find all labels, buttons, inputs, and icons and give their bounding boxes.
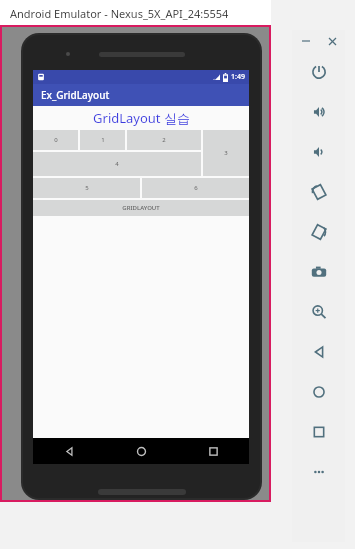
button[interactable]: Home: [105, 438, 177, 464]
button[interactable]: Volume down: [292, 132, 345, 172]
button[interactable]: Back: [292, 332, 345, 372]
staticText: Ex_GridLayout: [41, 88, 110, 102]
button[interactable]: GRIDLAYOUT: [33, 200, 249, 216]
staticText: 1: [101, 136, 105, 144]
staticText: GRIDLAYOUT: [122, 204, 160, 212]
staticText: GridLayout 실습: [93, 109, 190, 127]
button[interactable]: Volume up: [292, 92, 345, 132]
button[interactable]: Take screenshot: [292, 252, 345, 292]
button[interactable]: 5: [33, 178, 140, 198]
staticText: 3: [224, 149, 228, 157]
button[interactable]: 0: [33, 130, 78, 150]
staticText: 1:49: [231, 72, 245, 82]
button[interactable]: Power: [292, 52, 345, 92]
button[interactable]: 6: [142, 178, 249, 198]
button[interactable]: 2: [127, 130, 201, 150]
button[interactable]: Rotate left: [292, 172, 345, 212]
button[interactable]: Recent apps: [292, 412, 345, 452]
button[interactable]: 3: [203, 130, 249, 176]
button[interactable]: Recent apps: [177, 438, 249, 464]
staticText: 6: [194, 184, 198, 192]
staticText: 2: [162, 136, 166, 144]
button[interactable]: Home: [292, 372, 345, 412]
button[interactable]: Rotate right: [292, 212, 345, 252]
button[interactable]: Close: [324, 33, 340, 49]
button[interactable]: Minimize: [298, 33, 314, 49]
button[interactable]: More: [292, 452, 345, 492]
staticText: 5: [85, 184, 89, 192]
staticText: 0: [54, 136, 58, 144]
staticText: 4: [115, 160, 119, 168]
staticText: Android Emulator - Nexus_5X_API_24:5554: [10, 6, 229, 21]
button[interactable]: Back: [33, 438, 105, 464]
button[interactable]: Zoom: [292, 292, 345, 332]
button[interactable]: 1: [80, 130, 125, 150]
